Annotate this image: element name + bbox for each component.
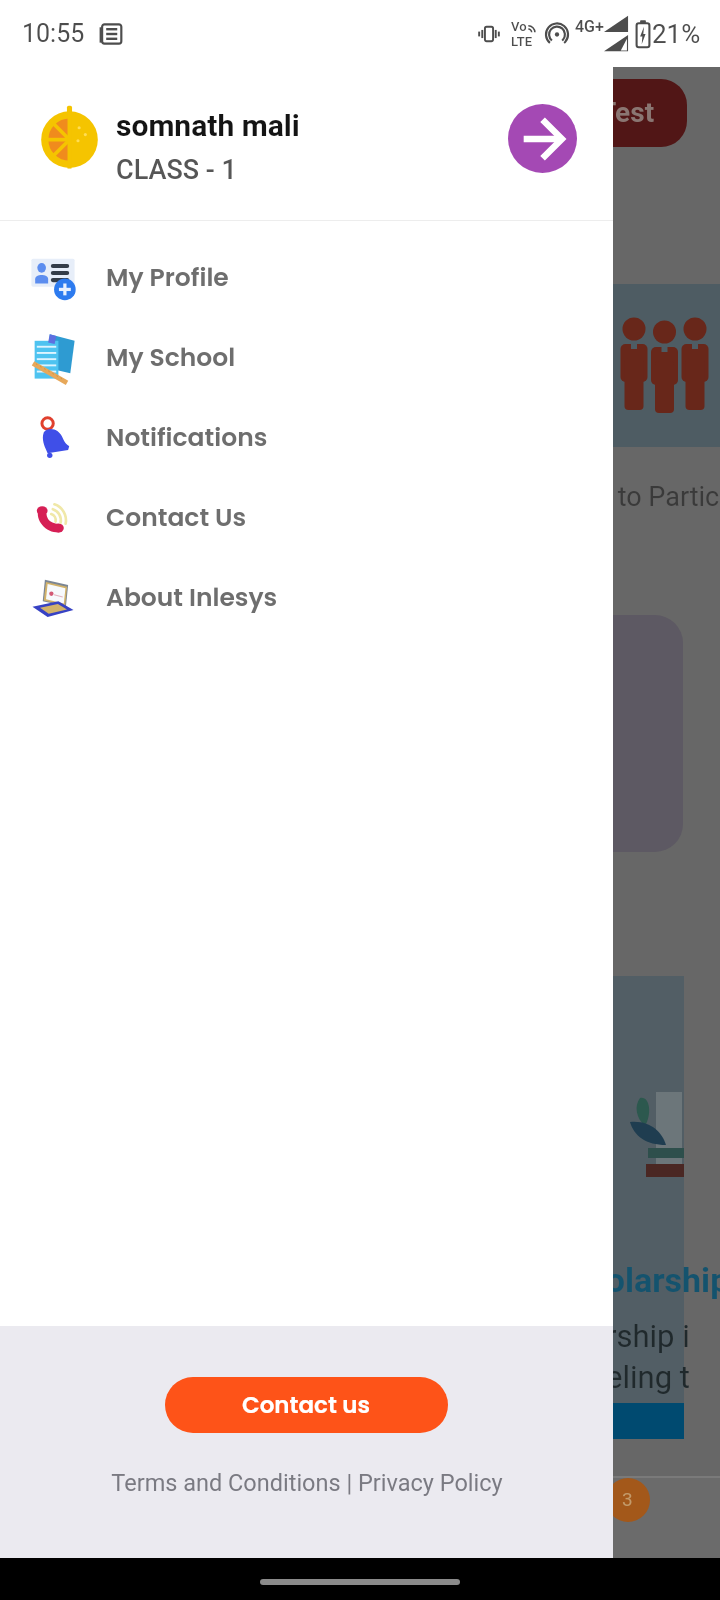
button[interactable]: Contact Us	[0, 477, 613, 557]
button[interactable]: Close navigation drawer	[508, 104, 577, 173]
staticText: Vo	[511, 19, 527, 34]
staticText: 10:55	[22, 19, 85, 48]
staticText: About Inlesys	[106, 580, 278, 615]
staticText: Scholarship	[548, 1260, 720, 1300]
button[interactable]: Notifications	[0, 397, 613, 477]
staticText: somnath mali	[116, 108, 300, 143]
staticText: Contact us	[242, 1389, 371, 1421]
staticText: CLASS - 1	[116, 154, 237, 186]
button[interactable]: My School	[0, 317, 613, 397]
staticText: My School	[106, 340, 236, 375]
staticText: eling t	[606, 1359, 690, 1395]
button[interactable]: Contact us	[165, 1377, 448, 1433]
staticText: 21%	[652, 19, 701, 49]
staticText: 4G+	[575, 17, 604, 36]
button[interactable]: About Inlesys	[0, 557, 613, 637]
staticText: Contact Us	[106, 500, 247, 535]
staticText: Test	[599, 96, 655, 129]
staticText: My Profile	[106, 260, 229, 295]
button[interactable]: My Profile	[0, 237, 613, 317]
staticText: LTE	[511, 34, 532, 49]
staticText: Notifications	[106, 420, 268, 455]
staticText: rship i	[606, 1318, 690, 1354]
staticText: 3	[622, 1488, 633, 1510]
staticText: How to Participate	[556, 481, 720, 513]
button[interactable]: Terms and Conditions | Privacy Policy	[111, 1469, 503, 1497]
